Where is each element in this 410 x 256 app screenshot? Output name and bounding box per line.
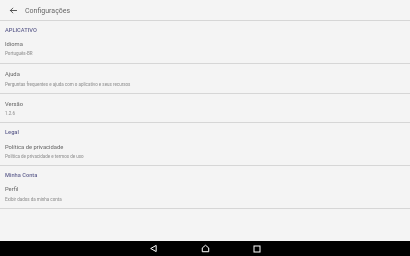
staticText: Perfil (5, 186, 19, 193)
staticText: Legal (5, 129, 19, 136)
staticText: Perguntas frequentes e ajuda com o aplic… (5, 82, 131, 87)
button[interactable]: Ajuda (0, 64, 410, 93)
button[interactable]: Versão (0, 94, 410, 122)
button[interactable]: Back (145, 241, 161, 256)
button[interactable]: Home (197, 241, 213, 256)
button[interactable]: Recent apps (249, 241, 265, 256)
staticText: APLICATIVO (5, 27, 37, 34)
button[interactable]: Política de privacidade (0, 123, 410, 165)
staticText: Configurações (25, 7, 71, 15)
staticText: Exibir dados da minha conta (5, 197, 62, 202)
button[interactable]: Idioma (0, 21, 410, 63)
staticText: Versão (5, 101, 24, 108)
staticText: Minha Conta (5, 172, 38, 179)
button[interactable]: Back (7, 4, 20, 17)
staticText: Português-BR (5, 51, 33, 56)
staticText: Política de privacidade (5, 144, 64, 151)
staticText: Política de privacidade e termos de uso (5, 154, 84, 159)
staticText: Ajuda (5, 71, 20, 78)
button[interactable]: Perfil (0, 166, 410, 208)
staticText: 1.2.6 (5, 111, 15, 116)
staticText: Idioma (5, 41, 23, 48)
